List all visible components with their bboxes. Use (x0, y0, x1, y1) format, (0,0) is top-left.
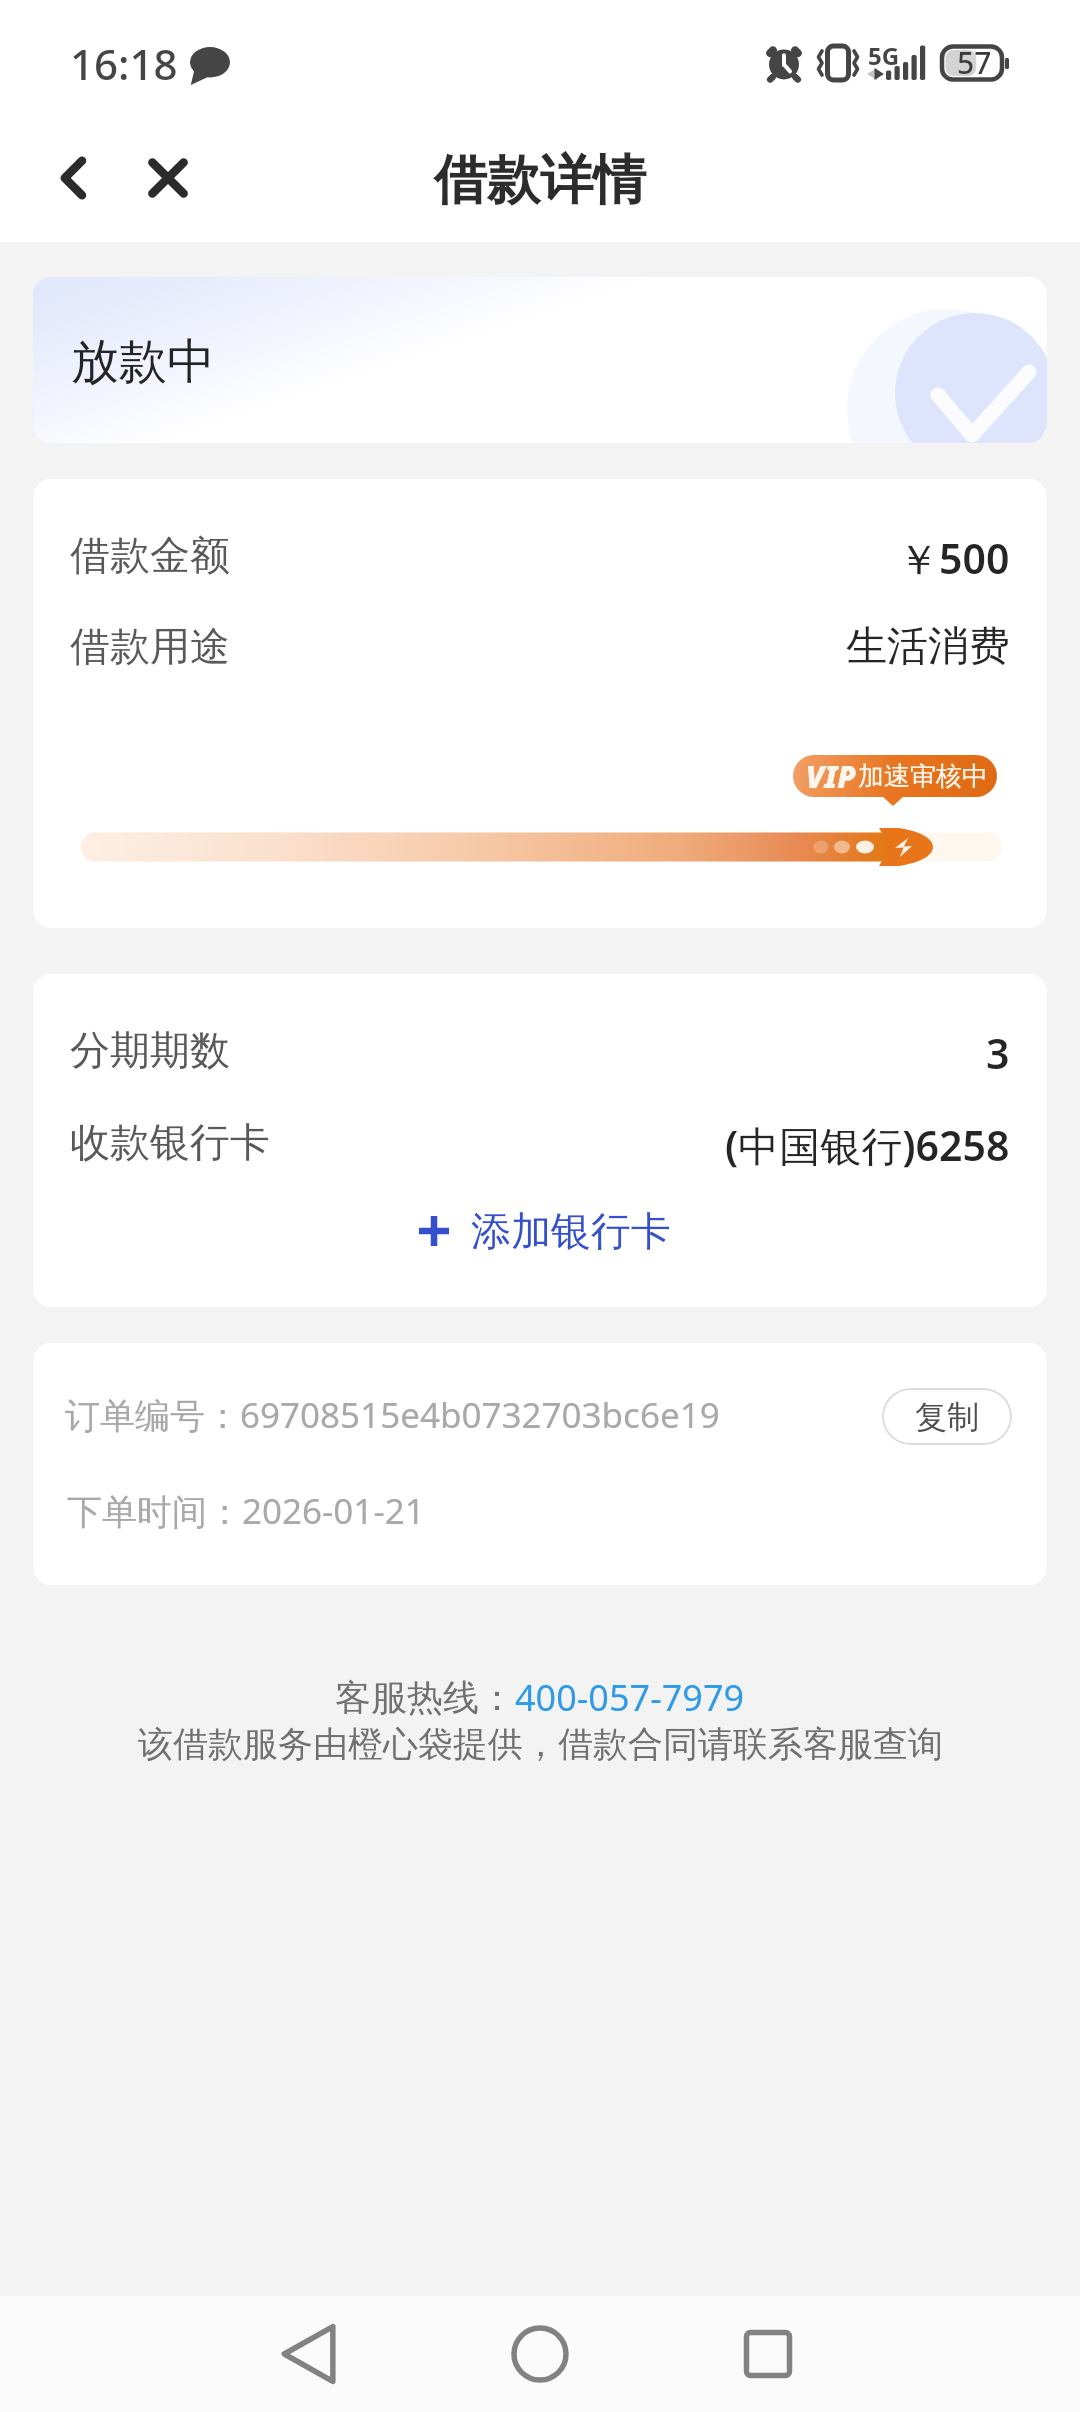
button[interactable]: Back (264, 2309, 354, 2399)
staticText: 3 (986, 1025, 1010, 1081)
button[interactable]: 400-057-7979 (515, 1673, 745, 1722)
staticText: 16:18 (70, 35, 178, 92)
staticText: 5G (868, 39, 900, 72)
staticText: 该借款服务由橙心袋提供，借款合同请联系客服查询 (138, 1722, 943, 1766)
button[interactable]: Close (128, 138, 208, 218)
staticText: 客服热线： (335, 1675, 515, 1720)
staticText: 收款银行卡 (70, 1117, 270, 1167)
staticText: 57 (957, 42, 992, 83)
staticText: 借款详情 (434, 147, 646, 214)
staticText: 加速审核中 (858, 760, 988, 793)
staticText: ￥500 (898, 530, 1010, 586)
button[interactable]: Recent apps (723, 2309, 813, 2399)
button[interactable]: Home (495, 2309, 585, 2399)
staticText: (中国银行)6258 (725, 1117, 1010, 1173)
staticText: 订单编号：69708515e4b0732703bc6e19 (65, 1391, 720, 1439)
staticText: 借款用途 (70, 621, 230, 671)
staticText: 生活消费 (846, 621, 1010, 673)
staticText: 添加银行卡 (471, 1206, 671, 1256)
staticText: VIP (806, 756, 856, 797)
staticText: 借款金额 (70, 530, 230, 580)
staticText: 复制 (915, 1397, 979, 1437)
button[interactable]: Back (34, 138, 114, 218)
button[interactable]: 复制 (882, 1388, 1012, 1445)
button[interactable]: 添加银行卡 (419, 1193, 671, 1269)
staticText: 下单时间：2026-01-21 (67, 1487, 425, 1535)
staticText: 分期期数 (70, 1025, 230, 1075)
button[interactable]: 放款中 (33, 277, 1047, 443)
staticText: 放款中 (71, 332, 215, 392)
